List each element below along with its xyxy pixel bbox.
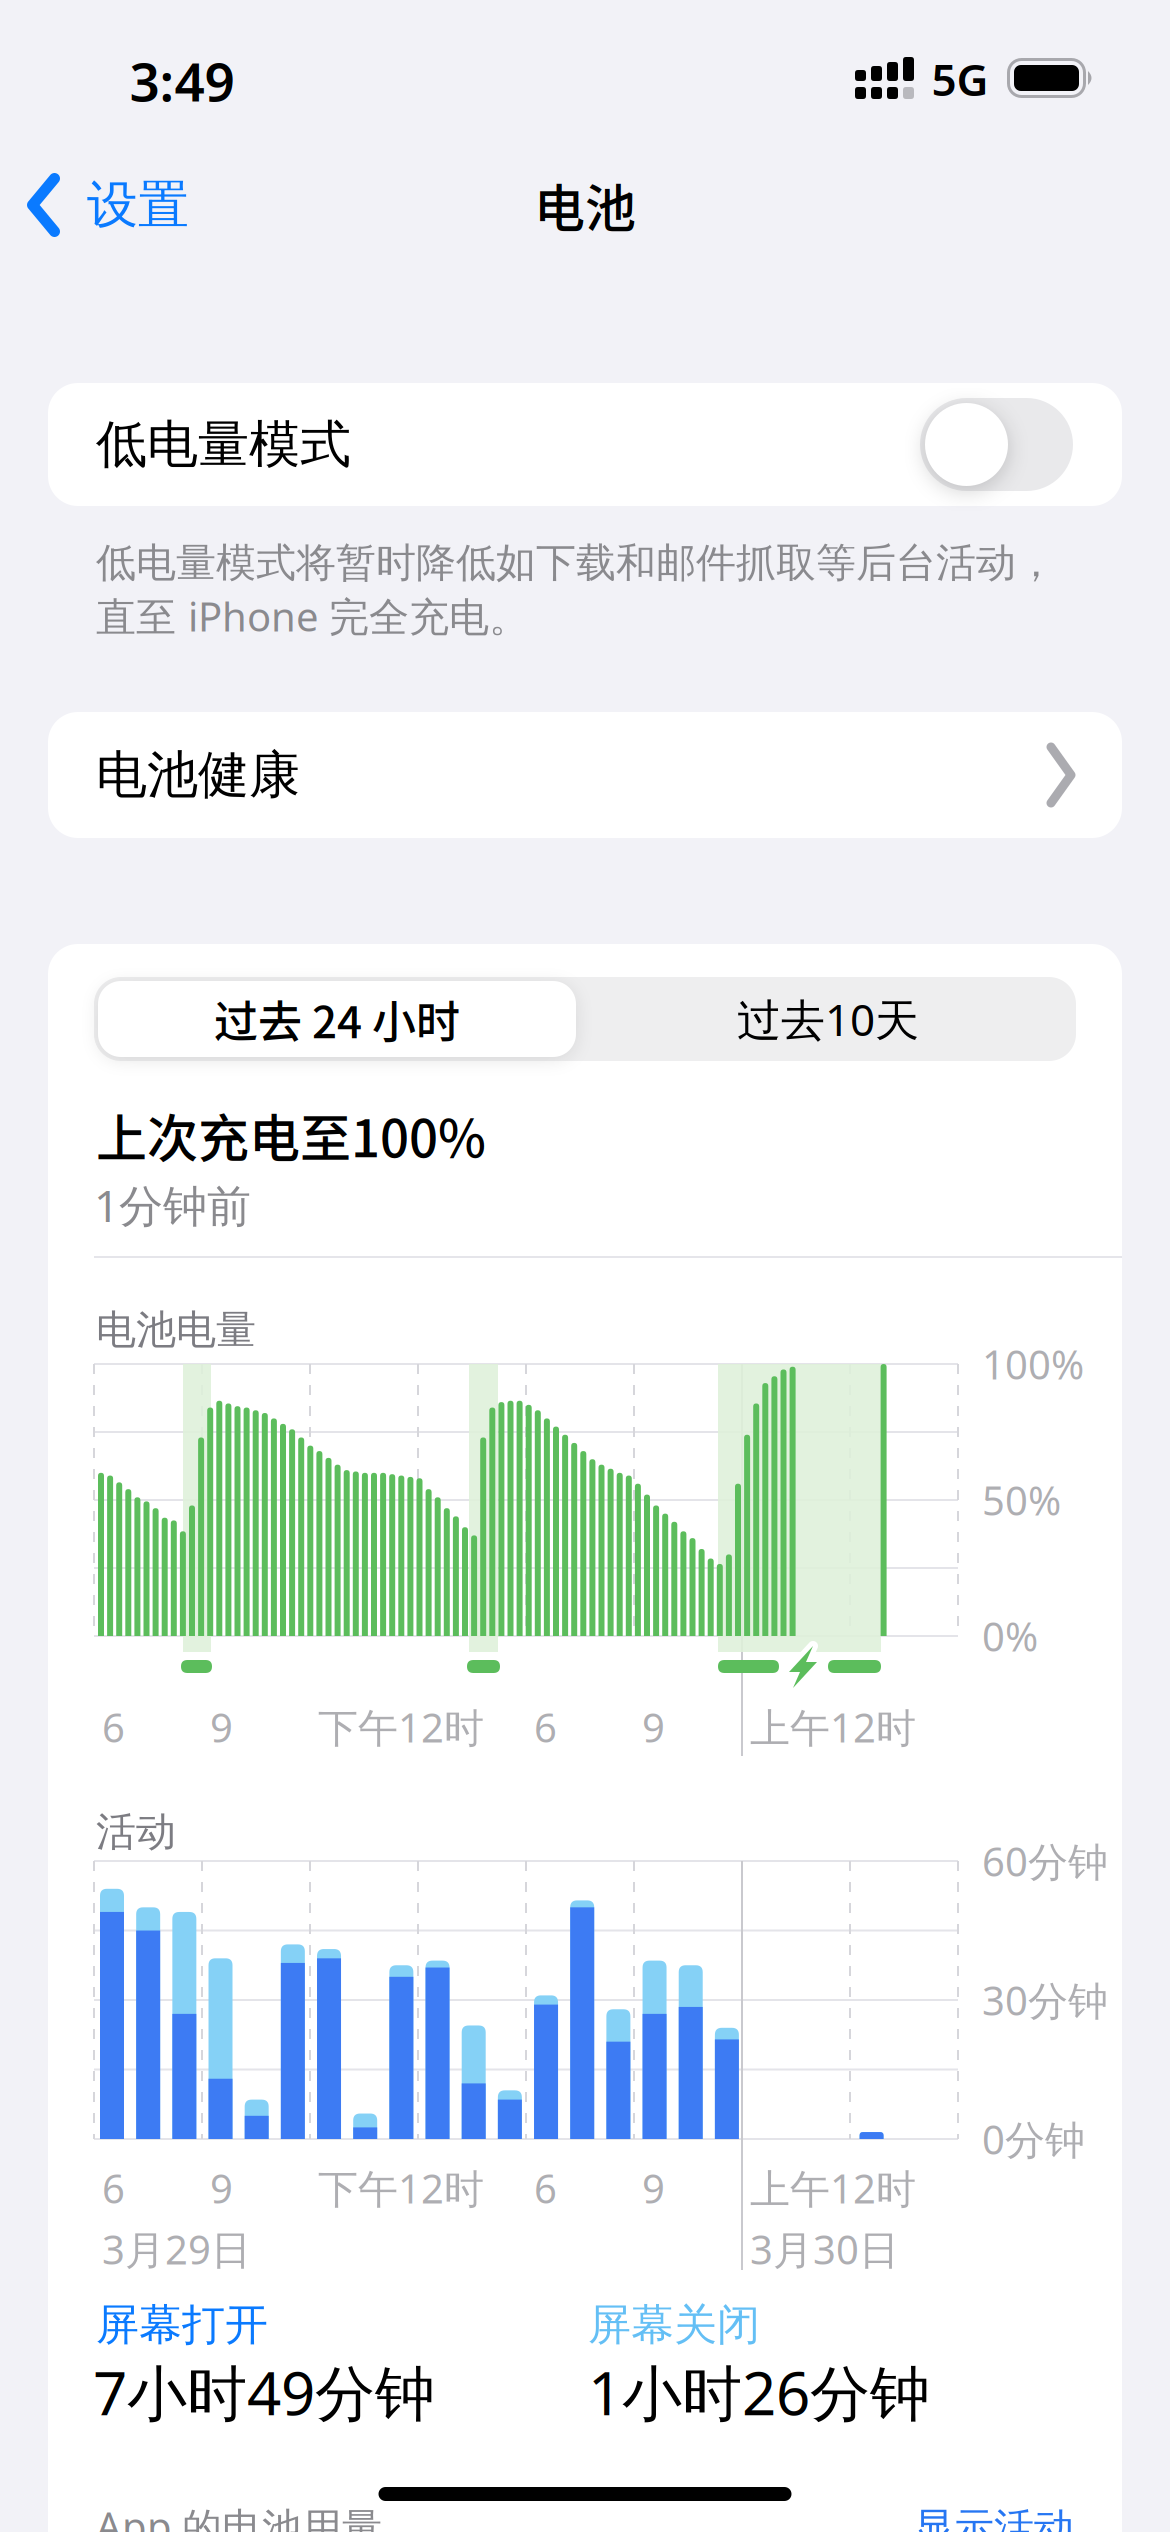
staticText: 30分钟 (982, 1973, 1108, 2026)
staticText: App 的电池用量 (96, 2499, 382, 2532)
staticText: 屏幕关闭 (588, 2299, 760, 2351)
staticText: 过去10天 (737, 990, 919, 1048)
staticText: 100% (982, 1337, 1084, 1390)
staticText: 3月29日 (102, 2222, 251, 2275)
staticText: 1小时26分钟 (588, 2352, 930, 2432)
staticText: 50% (982, 1473, 1061, 1526)
staticText: 上次充电至100% (96, 1099, 486, 1171)
staticText: 5G (931, 50, 988, 108)
staticText: 设置 (87, 174, 189, 236)
staticText: 6 (534, 1700, 557, 1753)
staticText: 9 (642, 2161, 665, 2214)
button[interactable]: 低电量模式 (920, 398, 1073, 491)
staticText: 7小时49分钟 (93, 2352, 435, 2432)
staticText: 活动 (96, 1807, 176, 1856)
button[interactable]: 过去10天 (587, 981, 1069, 1057)
button[interactable]: 显示活动 (774, 2503, 1074, 2532)
staticText: 1分钟前 (94, 1176, 251, 1234)
staticText: 下午12时 (318, 1700, 484, 1753)
staticText: 3:49 (129, 46, 234, 116)
staticText: 上午12时 (750, 1700, 916, 1753)
staticText: 上午12时 (750, 2161, 916, 2214)
staticText: 0% (982, 1609, 1038, 1662)
staticText: 低电量模式将暂时降低如下载和邮件抓取等后台活动， (96, 538, 1056, 587)
staticText: 9 (210, 2161, 233, 2214)
staticText: 0分钟 (982, 2112, 1085, 2165)
staticText: 60分钟 (982, 1834, 1108, 1887)
staticText: 屏幕打开 (96, 2299, 268, 2351)
staticText: 下午12时 (318, 2161, 484, 2214)
staticText: 电池电量 (96, 1305, 256, 1354)
staticText: 过去 24 小时 (214, 988, 460, 1050)
staticText: 显示活动 (914, 2503, 1074, 2532)
staticText: 3月30日 (750, 2222, 899, 2275)
staticText: 6 (102, 2161, 125, 2214)
staticText: 低电量模式 (96, 413, 351, 476)
staticText: 9 (642, 1700, 665, 1753)
button[interactable]: 返回设置 (20, 155, 240, 255)
staticText: 6 (102, 1700, 125, 1753)
staticText: 6 (534, 2161, 557, 2214)
staticText: 直至 iPhone 完全充电。 (96, 589, 529, 642)
button[interactable]: 电池健康 (48, 712, 1122, 838)
staticText: 电池 (534, 169, 636, 241)
staticText: 9 (210, 1700, 233, 1753)
button[interactable]: 过去 24 小时 (98, 981, 576, 1057)
staticText: 电池健康 (96, 744, 300, 806)
